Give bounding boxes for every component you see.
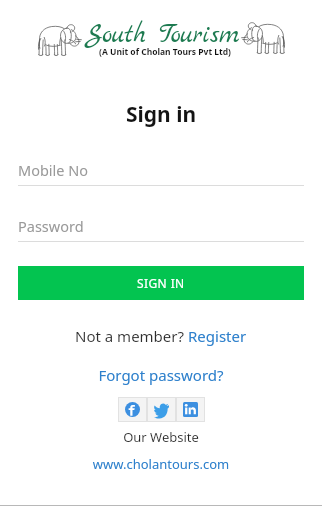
button[interactable]: Facebook <box>118 397 147 422</box>
button[interactable]: LinkedIn <box>176 397 205 422</box>
staticText: South Tourism <box>85 18 240 53</box>
button[interactable]: Register <box>188 326 247 346</box>
staticText: Sign in <box>0 100 322 129</box>
staticText: (A Unit of Cholan Tours Pvt Ltd) <box>4 46 322 58</box>
button[interactable]: www.cholantours.com <box>0 455 322 473</box>
staticText: Password <box>18 216 84 236</box>
staticText: Our Website <box>0 428 322 446</box>
staticText: Mobile No <box>18 160 89 180</box>
button[interactable]: Twitter <box>147 397 176 422</box>
button[interactable]: Forgot password? <box>0 365 322 385</box>
staticText: Not a member? <box>75 326 188 346</box>
button[interactable]: SIGN IN <box>18 266 304 300</box>
staticText: SIGN IN <box>137 275 185 291</box>
